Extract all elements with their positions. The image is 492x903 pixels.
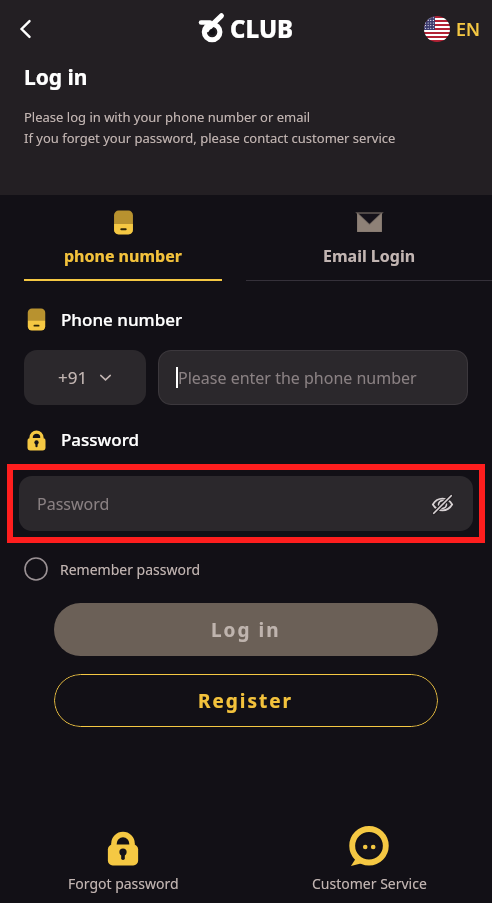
- staticText: Please enter the phone number: [178, 367, 417, 389]
- staticText: Remember password: [60, 560, 201, 579]
- button[interactable]: Forgot password: [0, 826, 246, 893]
- button[interactable]: Language EN: [424, 16, 480, 42]
- staticText: Register: [198, 688, 294, 714]
- staticText: Log in: [211, 617, 281, 643]
- staticText: Phone number: [61, 308, 183, 331]
- staticText: CLUB: [230, 12, 294, 45]
- staticText: Forgot password: [68, 874, 179, 893]
- staticText: If you forget your password, please cont…: [24, 129, 396, 147]
- staticText: Log in: [24, 63, 88, 92]
- staticText: Please log in with your phone number or …: [24, 108, 311, 126]
- button[interactable]: Back: [4, 7, 48, 51]
- button[interactable]: Log in: [54, 603, 438, 656]
- staticText: +91: [58, 366, 88, 389]
- staticText: Email Login: [323, 245, 416, 267]
- staticText: EN: [456, 17, 480, 42]
- button[interactable]: Please enter the phone number: [158, 350, 468, 405]
- staticText: Password: [37, 493, 110, 515]
- button[interactable]: Show password: [427, 489, 457, 519]
- staticText: Customer Service: [312, 874, 427, 893]
- button[interactable]: Password: [19, 476, 473, 531]
- button[interactable]: Remember password: [24, 557, 201, 581]
- button[interactable]: Email Login: [246, 195, 492, 281]
- button[interactable]: +91: [24, 350, 146, 405]
- staticText: Password: [61, 428, 140, 451]
- button[interactable]: Customer Service: [246, 826, 492, 893]
- button[interactable]: phone number: [24, 195, 222, 281]
- button[interactable]: Register: [54, 674, 438, 727]
- staticText: phone number: [64, 245, 182, 267]
